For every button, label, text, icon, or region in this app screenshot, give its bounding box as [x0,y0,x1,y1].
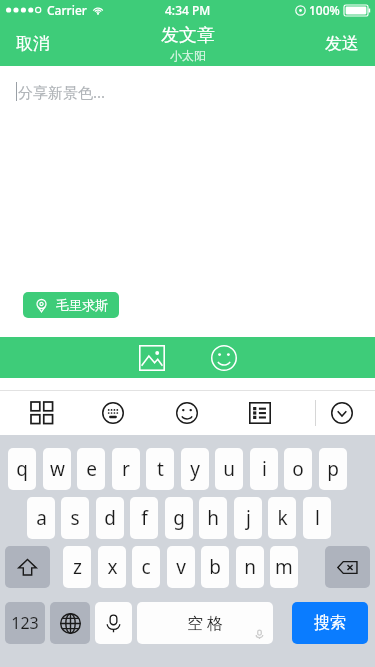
button[interactable]: 123 [5,602,45,644]
button[interactable]: Add photo [133,339,171,377]
button[interactable]: s [61,497,89,539]
button[interactable]: q [8,448,36,490]
staticText: z [73,554,82,580]
button[interactable]: r [112,448,140,490]
staticText: c [141,554,151,580]
staticText: 发文章 [161,24,215,47]
staticText: 发送 [325,33,359,54]
button[interactable]: Emoji [165,391,209,435]
staticText: o [292,456,304,482]
button[interactable]: 取消 [0,25,66,62]
staticText: w [50,456,65,482]
staticText: s [70,505,80,531]
button[interactable]: 空 格 [137,602,273,644]
button[interactable]: Hide keyboard [320,391,364,435]
staticText: q [16,456,28,482]
staticText: x [107,554,118,580]
staticText: 100% [309,2,340,18]
button[interactable]: z [63,546,91,588]
staticText: a [36,505,47,531]
button[interactable]: v [167,546,195,588]
button[interactable]: e [77,448,105,490]
button[interactable]: t [146,448,174,490]
staticText: m [275,554,293,580]
staticText: Carrier [47,2,87,18]
button[interactable]: Shift [5,546,50,588]
button[interactable]: u [215,448,243,490]
button[interactable]: m [270,546,298,588]
staticText: 123 [11,612,39,634]
staticText: 空 格 [187,612,224,634]
staticText: 小太阳 [170,48,206,63]
button[interactable]: h [199,497,227,539]
button[interactable]: Backspace [325,546,370,588]
staticText: h [207,505,219,531]
staticText: y [190,456,200,482]
staticText: 取消 [16,33,50,54]
staticText: f [141,505,148,531]
button[interactable]: l [303,497,331,539]
button[interactable]: Change language [50,602,90,644]
staticText: k [277,505,288,531]
staticText: r [122,456,130,482]
button[interactable]: d [96,497,124,539]
staticText: 毛里求斯 [56,297,108,313]
button[interactable]: Apps [20,391,64,435]
staticText: g [173,505,185,531]
button[interactable]: w [43,448,71,490]
button[interactable]: a [27,497,55,539]
staticText: j [246,505,251,531]
staticText: b [209,554,221,580]
button[interactable]: k [268,497,296,539]
button[interactable]: g [165,497,193,539]
button[interactable]: f [130,497,158,539]
staticText: p [327,456,339,482]
staticText: e [86,456,97,482]
staticText: i [262,456,267,482]
button[interactable]: 搜索 [292,602,368,644]
button[interactable]: Keyboard [91,391,135,435]
staticText: l [315,505,320,531]
button[interactable]: b [201,546,229,588]
staticText: v [176,554,186,580]
button[interactable]: i [250,448,278,490]
button[interactable]: Clipboard [238,391,282,435]
button[interactable]: 发送 [309,25,375,62]
staticText: 搜索 [314,613,346,633]
staticText: d [104,505,116,531]
staticText: t [157,456,164,482]
button[interactable]: o [284,448,312,490]
button[interactable]: y [181,448,209,490]
button[interactable]: Voice input [95,602,132,644]
button[interactable]: j [234,497,262,539]
button[interactable]: x [98,546,126,588]
button[interactable]: p [319,448,347,490]
staticText: 4:34 PM [165,2,211,18]
button[interactable]: Emoji [205,339,243,377]
button[interactable]: 毛里求斯 [23,292,119,318]
button[interactable]: n [236,546,264,588]
button[interactable]: c [132,546,160,588]
staticText: u [223,456,235,482]
staticText: n [244,554,256,580]
staticText: 分享新景色... [18,82,106,102]
